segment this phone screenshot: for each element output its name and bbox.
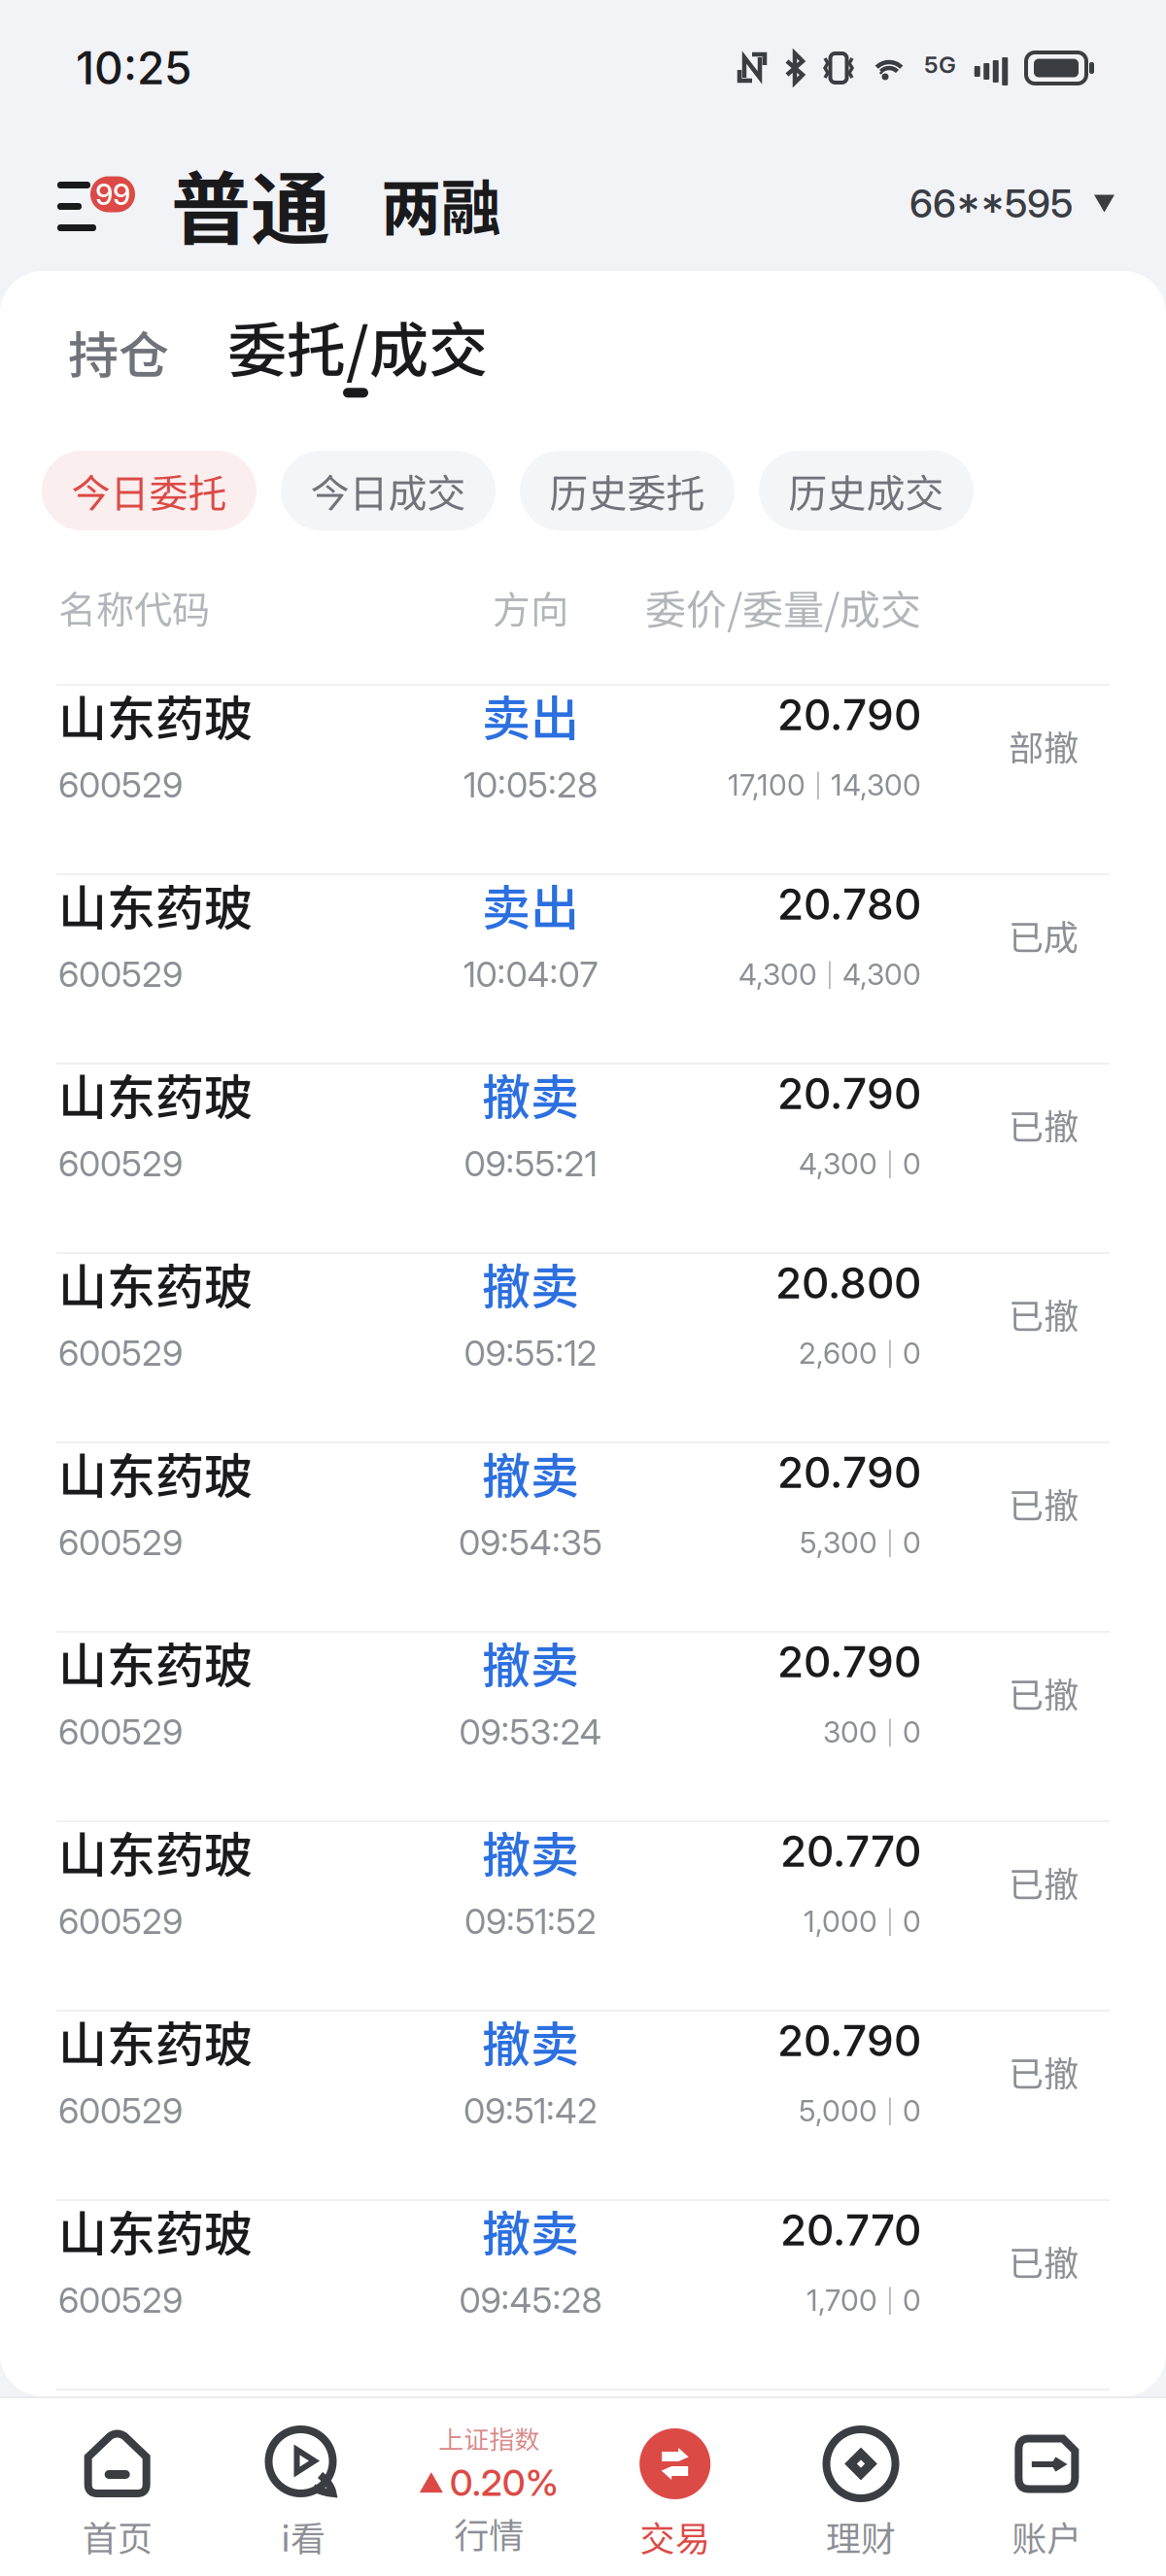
staticText: 600529 — [58, 1711, 183, 1753]
button[interactable]: 菜单 — [49, 159, 147, 248]
staticText: 已成 — [1009, 910, 1079, 960]
button[interactable]: 山东药玻 — [0, 2201, 1166, 2389]
staticText: 20.790 — [777, 1068, 921, 1119]
staticText: 山东药玻 — [58, 1248, 253, 1319]
staticText: 山东药玻 — [58, 1438, 253, 1508]
staticText: 600529 — [58, 2089, 183, 2132]
button[interactable]: 山东药玻 — [0, 1065, 1166, 1252]
staticText: 99 — [95, 177, 130, 212]
staticText: 0 — [903, 2093, 921, 2129]
staticText: 10:04:07 — [463, 953, 598, 995]
staticText: 山东药玻 — [58, 2195, 253, 2266]
staticText: 山东药玻 — [58, 1627, 253, 1697]
staticText: 17,100 — [728, 767, 806, 803]
staticText: 600529 — [58, 2279, 183, 2321]
button[interactable]: 山东药玻 — [0, 1254, 1166, 1441]
button[interactable]: 今日成交 — [281, 451, 496, 530]
button[interactable]: i看 — [210, 2398, 396, 2576]
staticText: 已撤 — [1009, 2046, 1079, 2097]
staticText: 600529 — [58, 1521, 183, 1563]
staticText: 66**595 — [909, 180, 1073, 227]
button[interactable]: 山东药玻 — [0, 686, 1166, 873]
staticText: 09:51:52 — [464, 1900, 597, 1942]
staticText: 卖出 — [482, 680, 579, 750]
button[interactable]: 两融 — [330, 144, 501, 263]
staticText: 委价/委量/成交 — [645, 578, 921, 637]
staticText: 撤卖 — [482, 1059, 579, 1129]
button[interactable]: 历史成交 — [759, 451, 974, 530]
staticText: | — [814, 771, 822, 799]
staticText: 委托/成交 — [227, 303, 488, 389]
staticText: 600529 — [58, 1332, 183, 1374]
staticText: 两融 — [381, 160, 501, 247]
button[interactable]: 66**595 — [909, 164, 1115, 243]
staticText: | — [886, 1529, 894, 1557]
staticText: 已撤 — [1009, 1099, 1079, 1150]
staticText: 今日委托 — [71, 462, 227, 519]
staticText: 20.770 — [780, 1825, 921, 1877]
staticText: 600529 — [58, 763, 183, 806]
staticText: 撤卖 — [482, 2195, 579, 2266]
staticText: 0 — [903, 1525, 921, 1560]
staticText: 撤卖 — [482, 1438, 579, 1508]
staticText: 20.790 — [777, 2015, 921, 2066]
staticText: 20.780 — [777, 878, 921, 930]
staticText: 20.790 — [777, 1446, 921, 1498]
staticText: 2,600 — [799, 1336, 877, 1371]
button[interactable]: 山东药玻 — [0, 1633, 1166, 1820]
button[interactable]: 委托/成交 — [169, 303, 488, 400]
button[interactable]: 理财 — [768, 2398, 954, 2576]
button[interactable]: 普通 — [147, 138, 330, 269]
staticText: 已撤 — [1009, 1857, 1079, 1907]
staticText: 1,700 — [806, 2283, 877, 2318]
staticText: 4,300 — [738, 957, 817, 992]
staticText: 0 — [903, 1714, 921, 1750]
staticText: 1,000 — [804, 1904, 877, 1939]
button[interactable]: 交易 — [582, 2398, 768, 2576]
staticText: 14,300 — [831, 767, 921, 803]
staticText: 持仓 — [68, 315, 169, 388]
staticText: 卖出 — [482, 869, 579, 940]
staticText: 已撤 — [1009, 1667, 1079, 1718]
staticText: 0 — [903, 1146, 921, 1181]
staticText: 600529 — [58, 953, 183, 995]
button[interactable]: 山东药玻 — [0, 2012, 1166, 2199]
button[interactable]: 账户 — [954, 2398, 1140, 2576]
staticText: 09:54:35 — [459, 1521, 602, 1563]
staticText: 0 — [903, 1904, 921, 1939]
staticText: 已撤 — [1009, 1288, 1079, 1339]
staticText: 5,300 — [800, 1525, 877, 1560]
button[interactable]: 首页 — [24, 2398, 210, 2576]
button[interactable]: 山东药玻 — [0, 1443, 1166, 1631]
staticText: 上证指数 — [439, 2420, 540, 2456]
staticText: 历史成交 — [789, 462, 944, 519]
staticText: 600529 — [58, 1142, 183, 1185]
staticText: 20.790 — [777, 689, 921, 740]
button[interactable]: 上证指数 — [396, 2398, 582, 2576]
staticText: 0.20% — [450, 2460, 559, 2505]
staticText: 09:55:21 — [464, 1142, 597, 1185]
staticText: | — [886, 2286, 894, 2314]
button[interactable]: 山东药玻 — [0, 875, 1166, 1063]
staticText: 部撤 — [1009, 720, 1079, 771]
staticText: 今日成交 — [310, 462, 466, 519]
staticText: 300 — [823, 1714, 877, 1750]
button[interactable]: 山东药玻 — [0, 1822, 1166, 2010]
staticText: 09:55:12 — [464, 1332, 597, 1374]
staticText: 5,000 — [799, 2093, 877, 2129]
button[interactable]: 今日委托 — [42, 451, 257, 530]
staticText: 普通 — [171, 146, 330, 261]
staticText: 20.770 — [780, 2204, 921, 2256]
staticText: 撤卖 — [482, 1816, 579, 1887]
staticText: 5G — [924, 51, 956, 79]
button[interactable]: 历史委托 — [520, 451, 735, 530]
staticText: 账户 — [1012, 2511, 1082, 2562]
staticText: | — [886, 1718, 894, 1746]
staticText: | — [826, 960, 834, 988]
staticText: 方向 — [493, 580, 568, 635]
staticText: 山东药玻 — [58, 1816, 253, 1887]
staticText: 历史委托 — [549, 462, 705, 519]
staticText: 4,300 — [799, 1146, 877, 1181]
button[interactable]: 持仓 — [68, 304, 169, 400]
staticText: 09:53:24 — [459, 1711, 602, 1753]
